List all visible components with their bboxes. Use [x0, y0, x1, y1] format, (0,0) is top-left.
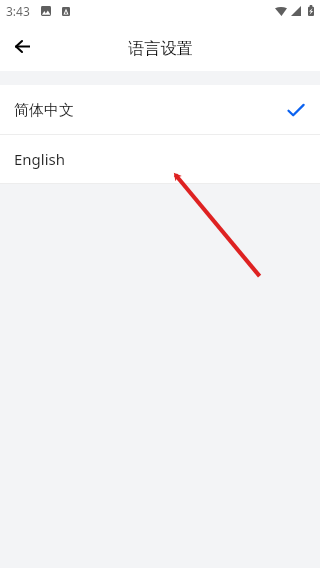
staticText: 3:43: [6, 3, 30, 19]
staticText: English: [14, 149, 66, 169]
button[interactable]: Back: [0, 24, 44, 68]
button[interactable]: English: [0, 135, 320, 183]
staticText: 语言设置: [128, 38, 193, 58]
staticText: 简体中文: [14, 101, 74, 120]
button[interactable]: 简体中文: [0, 85, 320, 134]
